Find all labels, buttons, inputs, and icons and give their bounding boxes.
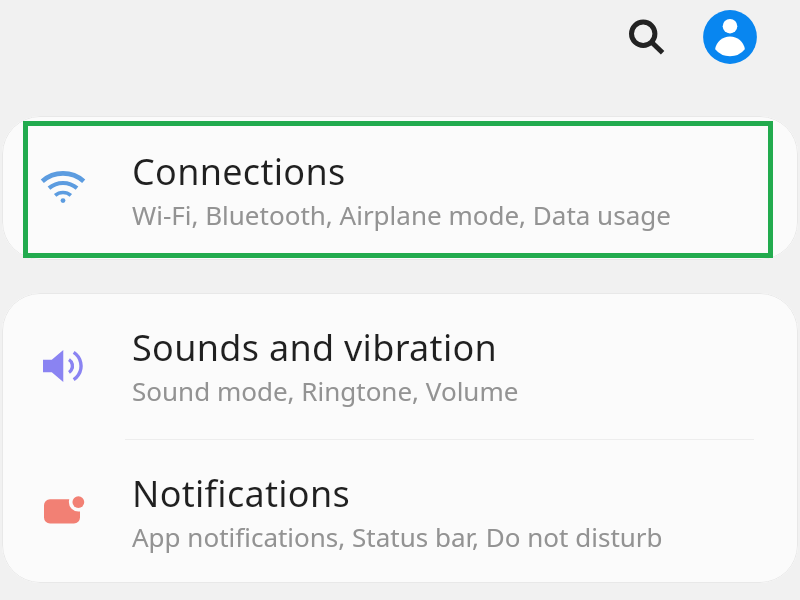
staticText: Sounds and vibration bbox=[132, 323, 498, 372]
button[interactable]: Account bbox=[701, 8, 759, 66]
staticText: Connections bbox=[132, 147, 346, 196]
staticText: Notifications bbox=[132, 469, 351, 518]
button[interactable]: Search bbox=[617, 7, 675, 65]
staticText: App notifications, Status bar, Do not di… bbox=[132, 519, 663, 554]
staticText: Wi-Fi, Bluetooth, Airplane mode, Data us… bbox=[132, 197, 671, 232]
button[interactable]: Sounds and vibration bbox=[2, 293, 798, 439]
button[interactable]: Connections bbox=[2, 116, 798, 260]
staticText: Sound mode, Ringtone, Volume bbox=[132, 373, 519, 408]
button[interactable]: Notifications bbox=[2, 440, 798, 583]
